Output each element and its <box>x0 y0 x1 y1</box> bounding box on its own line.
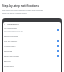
other: Back <box>4 23 6 25</box>
button[interactable]: Delivered <box>3 48 61 53</box>
staticText: All notifications <box>4 27 17 29</box>
staticText: Arriving soon <box>4 45 57 47</box>
staticText: Out for delivery <box>4 40 57 42</box>
staticText: Delivery window <box>4 35 57 37</box>
staticText: Notifications <box>7 23 19 26</box>
staticText: Get alerts for each delivery stage and m… <box>2 9 43 12</box>
staticText: Step-by-step notifications <box>2 4 39 8</box>
staticText: them all from a single place. <box>2 12 28 15</box>
staticText: Delays and issues <box>4 55 57 57</box>
staticText: < <box>4 23 6 25</box>
button[interactable]: Delays and issues <box>3 53 61 58</box>
button[interactable]: Out for delivery <box>3 38 61 43</box>
staticText: Promotions <box>4 65 57 67</box>
button[interactable]: All notifications <box>3 26 61 33</box>
button[interactable]: Back <box>3 22 61 26</box>
button[interactable]: Promotions <box>3 63 61 68</box>
staticText: Delivered <box>4 50 57 52</box>
staticText: Turn everything on or off <box>4 30 23 32</box>
button[interactable]: Returns <box>3 58 61 63</box>
button[interactable]: Arriving soon <box>3 43 61 48</box>
button[interactable]: Delivery window <box>3 33 61 38</box>
staticText: Returns <box>4 60 57 62</box>
